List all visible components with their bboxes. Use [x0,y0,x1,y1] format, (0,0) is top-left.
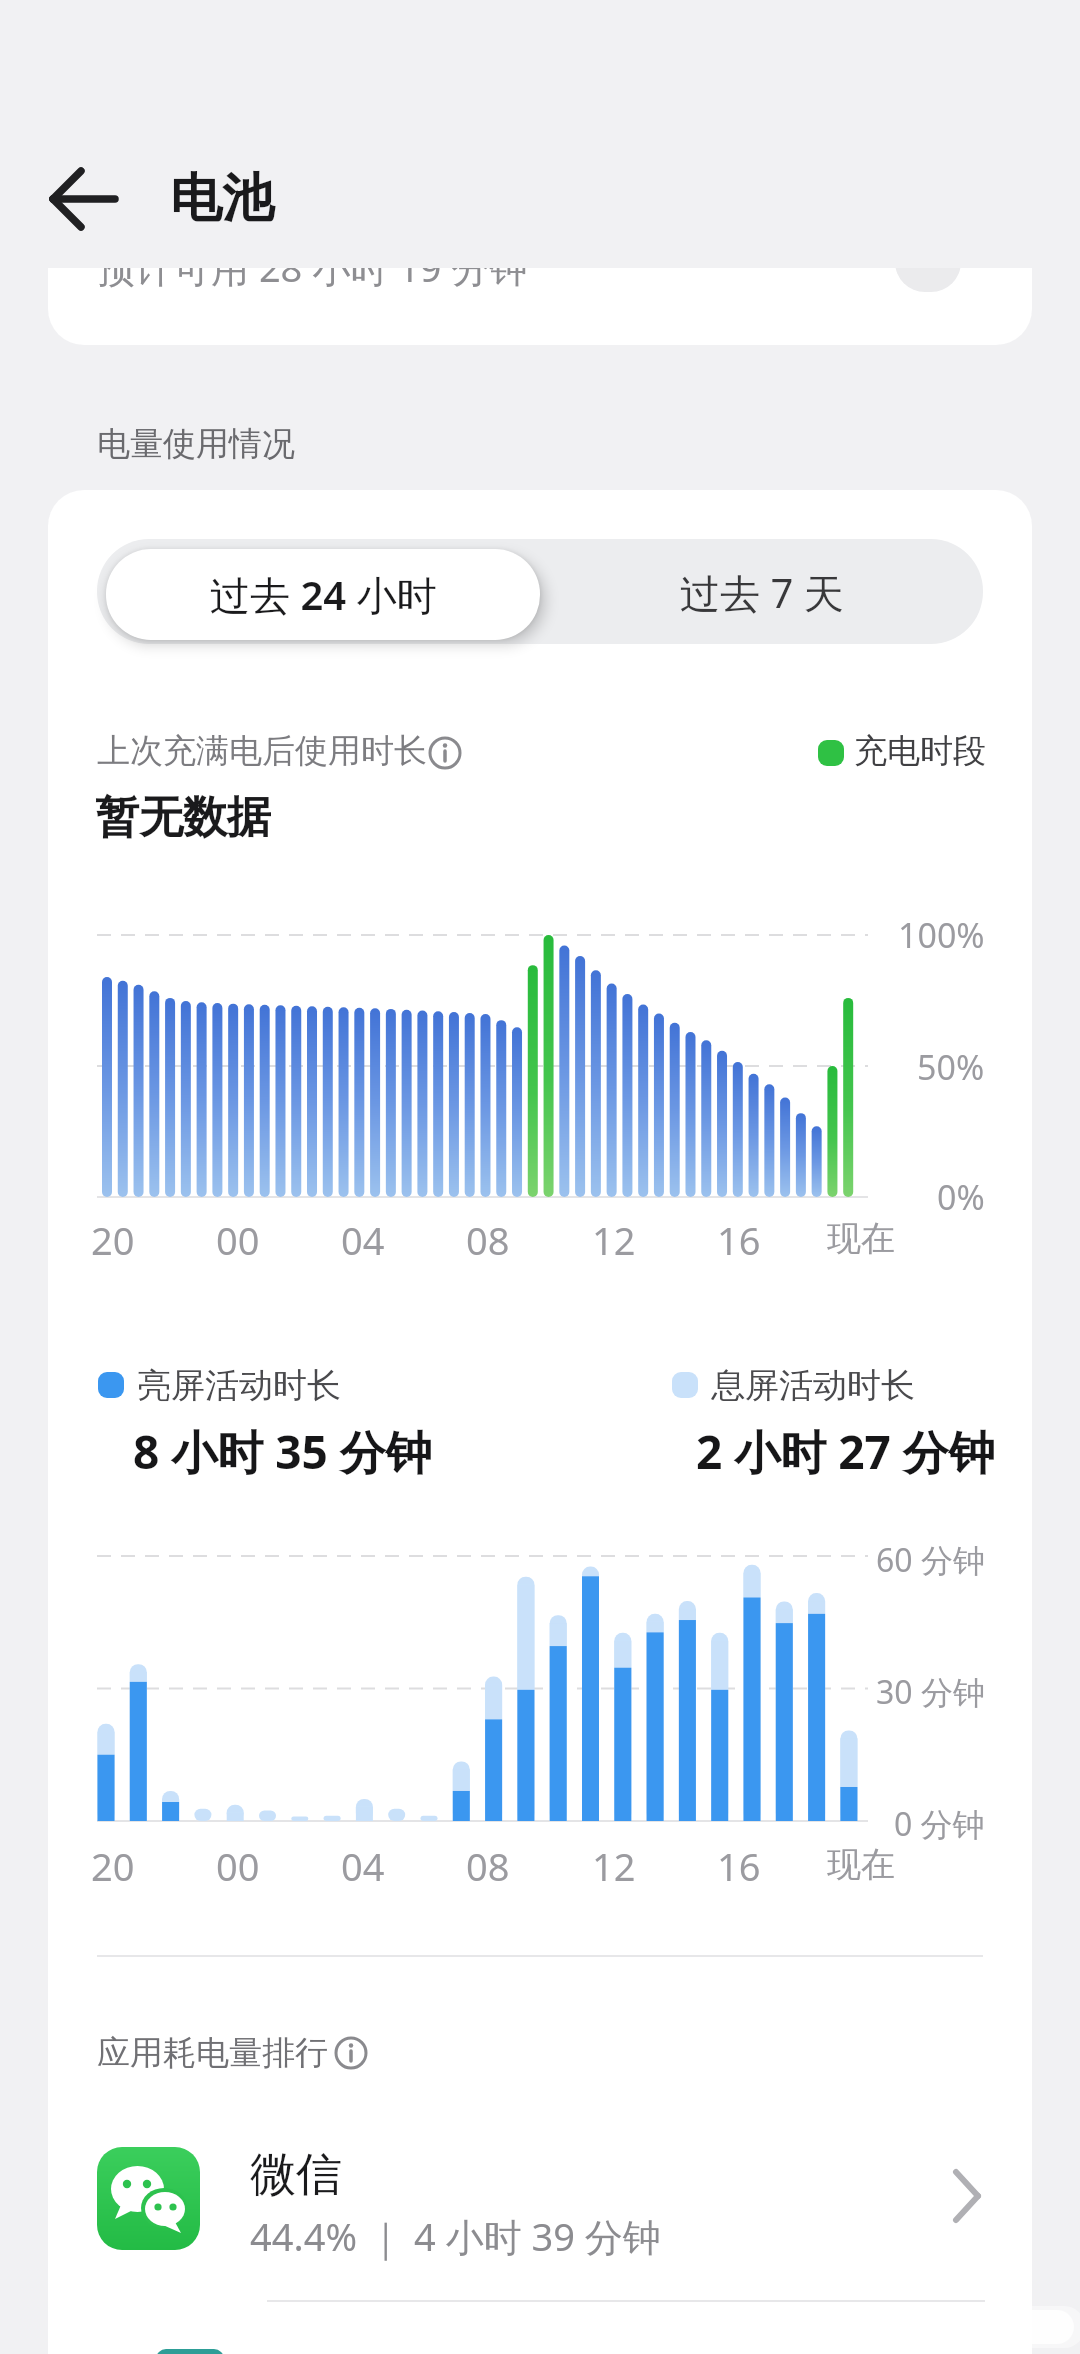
staticText: 100% [898,912,985,958]
staticText: 过去 24 小时 [210,567,437,622]
staticText: 暂无数据 [95,790,271,842]
button[interactable] [540,546,983,638]
staticText: 50% [917,1044,985,1090]
staticText: 04 [341,1840,385,1888]
staticText: 电量使用情况 [97,423,295,465]
staticText: 12 [592,1840,636,1888]
staticText: 过去 7 天 [680,565,844,620]
button[interactable] [106,549,540,640]
staticText: 08 [466,1840,510,1888]
staticText: 应用耗电量排行 [97,2032,328,2074]
staticText: 电池 [170,166,274,232]
staticText: 00 [216,1840,260,1888]
staticText: 16 [717,1840,761,1888]
button[interactable] [40,156,126,242]
staticText: 上次充满电后使用时长 [97,730,427,772]
staticText: 0% [937,1174,985,1220]
staticText: 亮屏活动时长 [137,1364,341,1407]
staticText: 00 [216,1214,260,1262]
staticText: 44.4% ｜ 4 小时 39 分钟 [250,2210,661,2262]
staticText: 12 [592,1214,636,1262]
staticText: 30 分钟 [876,1670,985,1714]
staticText: 2 小时 27 分钟 [696,1420,995,1476]
staticText: 08 [466,1214,510,1262]
button[interactable] [48,2120,1032,2280]
staticText: 现在 [827,1217,895,1260]
staticText: 8 小时 35 分钟 [133,1420,432,1476]
staticText: 0 分钟 [894,1802,985,1846]
staticText: 预计可用 28 小时 19 分钟 [97,268,528,291]
staticText: 16 [717,1214,761,1262]
button[interactable] [97,539,983,644]
staticText: 现在 [827,1843,895,1886]
button[interactable]: 预计可用 28 小时 19 分钟 [48,268,1032,345]
staticText: 充电时段 [854,730,986,772]
staticText: 微信 [250,2146,342,2198]
staticText: 20 [91,1214,135,1262]
button[interactable] [428,736,462,770]
button[interactable] [334,2036,368,2070]
staticText: 息屏活动时长 [711,1364,915,1407]
staticText: 20 [91,1840,135,1888]
staticText: 04 [341,1214,385,1262]
staticText: 60 分钟 [876,1538,985,1582]
